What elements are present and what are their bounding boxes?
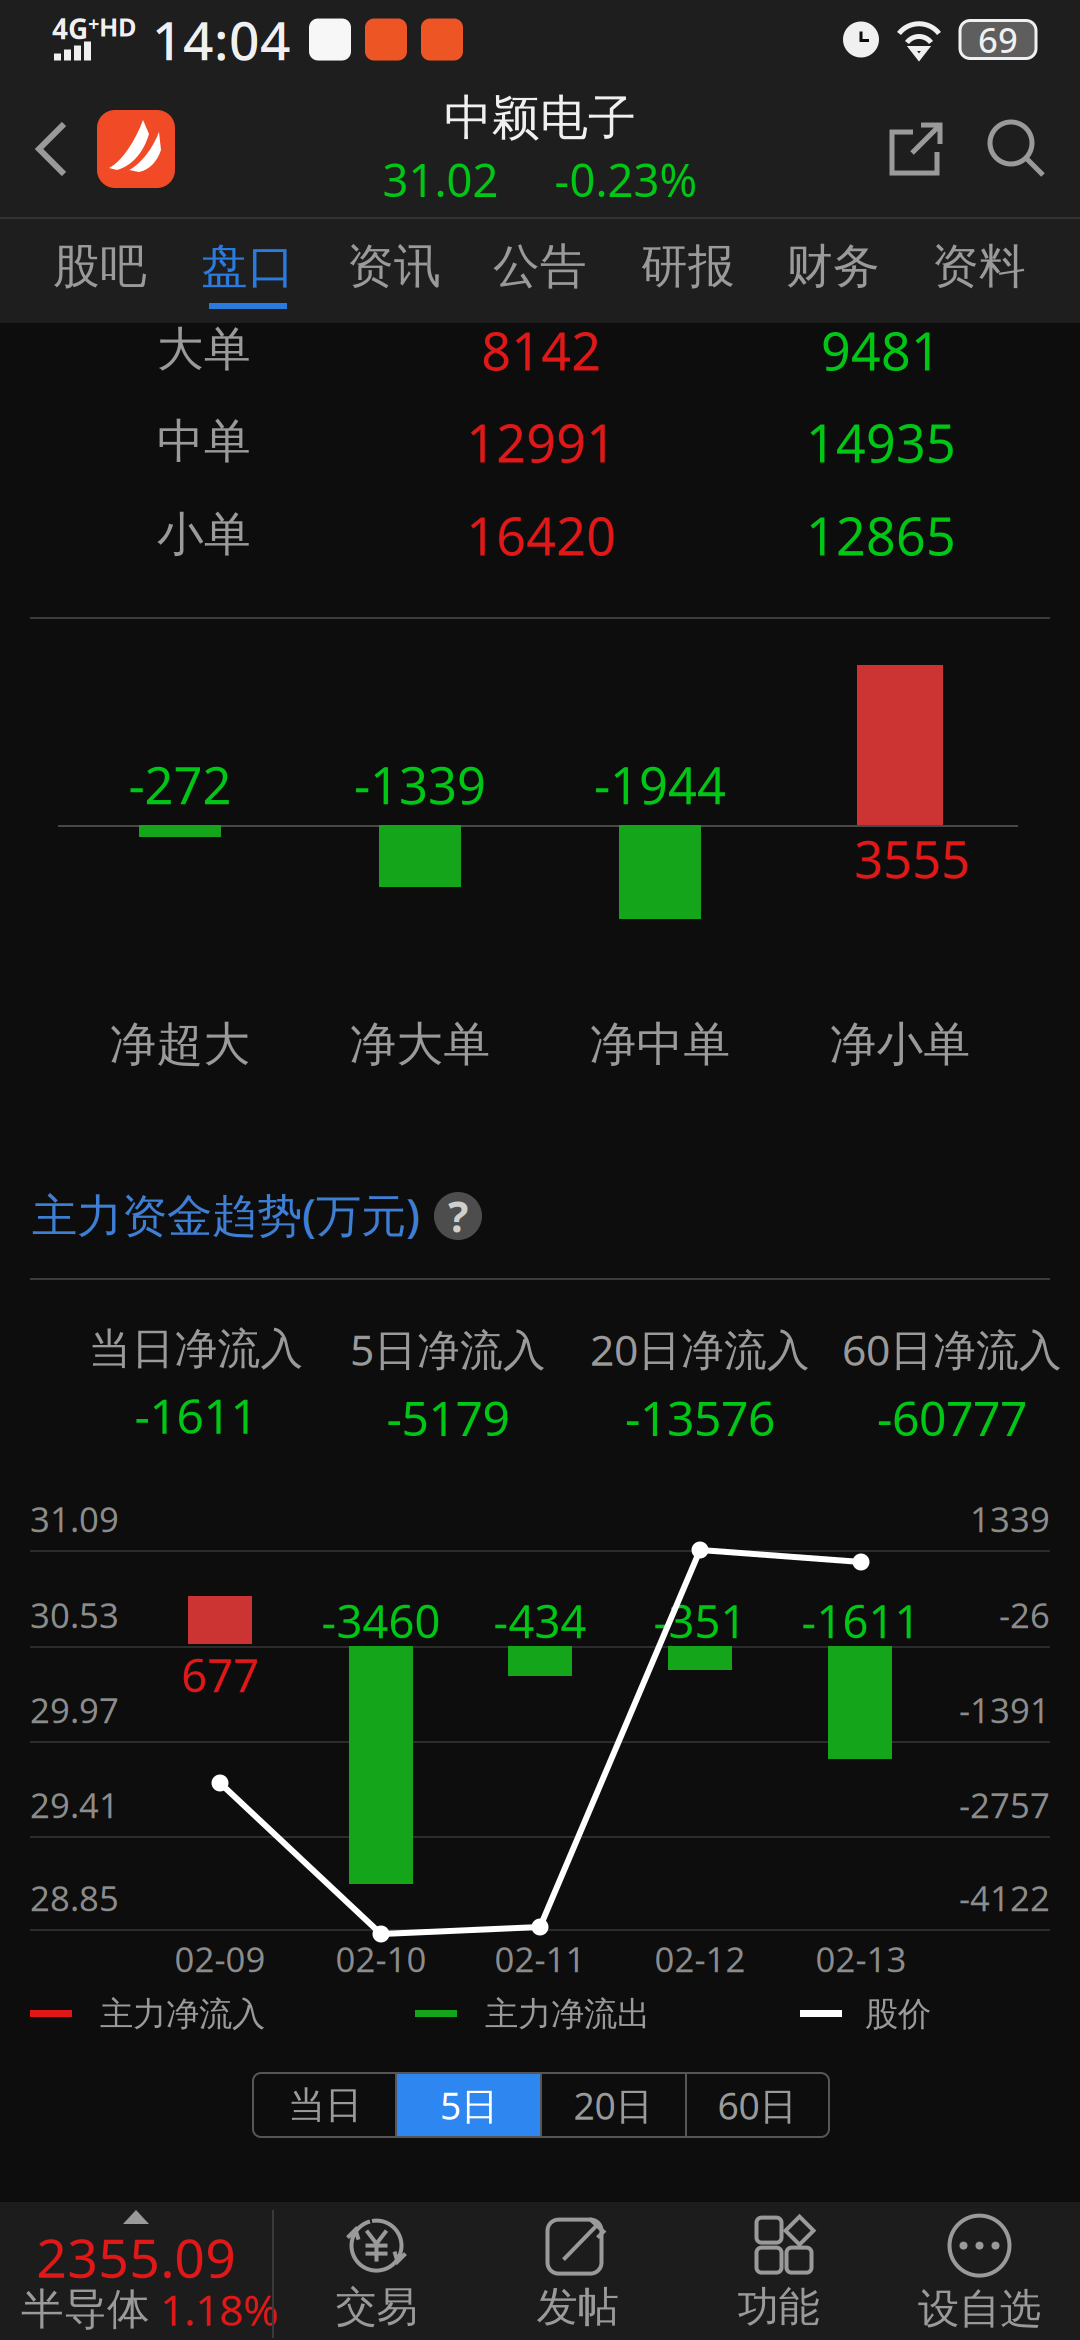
staticText: 3555: [854, 825, 970, 892]
staticText: 股吧: [53, 238, 147, 295]
staticText: 20日: [573, 2080, 652, 2130]
staticText: -60777: [877, 1385, 1027, 1449]
staticText: 30.53: [30, 1592, 119, 1638]
button[interactable]: Search: [966, 89, 1066, 209]
staticText: +: [88, 10, 99, 36]
button[interactable]: 研报: [615, 219, 761, 323]
staticText: 财务: [786, 238, 880, 295]
staticText: 中单: [157, 413, 251, 470]
staticText: -1391: [959, 1687, 1050, 1733]
staticText: 当日: [288, 2082, 362, 2128]
staticText: -3460: [321, 1590, 440, 1651]
staticText: -272: [128, 751, 231, 818]
staticText: 盘口: [201, 238, 295, 295]
staticText: 69: [978, 16, 1018, 62]
button[interactable]: 财务: [760, 219, 906, 323]
staticText: 29.41: [30, 1782, 119, 1828]
staticText: 5日: [440, 2080, 498, 2130]
staticText: -351: [653, 1590, 746, 1651]
staticText: -1944: [594, 751, 726, 818]
staticText: -5179: [386, 1385, 509, 1449]
button[interactable]: 公告: [467, 219, 613, 323]
staticText: 14935: [806, 408, 956, 477]
staticText: 1339: [970, 1496, 1050, 1542]
staticText: 29.97: [30, 1687, 119, 1733]
staticText: 4G: [52, 10, 88, 47]
staticText: 12991: [466, 408, 616, 477]
staticText: 股价: [865, 1994, 931, 2035]
staticText: 5日净流入: [350, 1321, 546, 1377]
staticText: 净小单: [829, 1016, 970, 1073]
staticText: 净超大: [109, 1016, 250, 1073]
staticText: 交易: [335, 2282, 417, 2332]
staticText: -26: [999, 1592, 1050, 1638]
staticText: -434: [493, 1590, 586, 1651]
staticText: 大单: [157, 321, 251, 378]
staticText: 主力净流出: [485, 1994, 650, 2035]
staticText: 02-12: [654, 1936, 745, 1982]
staticText: 净大单: [349, 1016, 490, 1073]
staticText: HD: [99, 10, 137, 43]
button[interactable]: Help: [434, 1192, 482, 1240]
staticText: -4122: [959, 1875, 1050, 1921]
staticText: 资讯: [347, 238, 441, 295]
staticText: -0.23%: [554, 149, 697, 210]
staticText: 31.09: [30, 1496, 119, 1542]
button[interactable]: App home: [88, 89, 184, 209]
staticText: 02-09: [174, 1936, 265, 1982]
staticText: 2355.09: [36, 2222, 236, 2292]
staticText: -1339: [354, 751, 486, 818]
staticText: -1611: [134, 1383, 257, 1447]
staticText: 资料: [932, 238, 1026, 295]
staticText: -2757: [959, 1782, 1050, 1828]
button[interactable]: 60日: [685, 2073, 829, 2137]
staticText: -1611: [801, 1590, 920, 1651]
staticText: 8142: [481, 316, 601, 385]
staticText: 半导体: [21, 2283, 150, 2335]
staticText: 02-10: [335, 1936, 426, 1982]
staticText: 发帖: [536, 2282, 618, 2332]
staticText: -13576: [625, 1385, 775, 1449]
staticText: 02-13: [815, 1936, 906, 1982]
staticText: 主力净流入: [100, 1994, 265, 2035]
staticText: 当日净流入: [88, 1323, 303, 1375]
staticText: 功能: [737, 2282, 819, 2332]
staticText: 1.18%: [160, 2281, 278, 2338]
staticText: 60日: [717, 2080, 796, 2130]
staticText: 28.85: [30, 1875, 119, 1921]
button[interactable]: 功能: [678, 2204, 879, 2340]
button[interactable]: Share: [866, 89, 966, 209]
staticText: 16420: [466, 501, 616, 570]
staticText: 中颖电子: [444, 88, 636, 147]
staticText: 研报: [641, 238, 735, 295]
button[interactable]: 交易: [276, 2204, 477, 2340]
staticText: 净中单: [589, 1016, 730, 1073]
staticText: 14:04: [152, 4, 291, 75]
staticText: 设自选: [918, 2284, 1041, 2334]
staticText: 公告: [493, 238, 587, 295]
staticText: 677: [181, 1644, 259, 1705]
button[interactable]: 资讯: [321, 219, 467, 323]
staticText: ?: [448, 1188, 468, 1244]
staticText: 60日净流入: [842, 1321, 1062, 1377]
staticText: 12865: [806, 501, 956, 570]
button[interactable]: 股吧: [27, 219, 173, 323]
button[interactable]: 5日: [397, 2073, 541, 2137]
button[interactable]: 盘口: [175, 219, 321, 323]
button[interactable]: 设自选: [879, 2204, 1080, 2340]
button[interactable]: 20日: [541, 2073, 685, 2137]
staticText: 主力资金趋势(万元): [32, 1184, 420, 1245]
button[interactable]: 发帖: [477, 2204, 678, 2340]
staticText: 9481: [821, 316, 941, 385]
button[interactable]: 资料: [906, 219, 1052, 323]
staticText: 小单: [157, 506, 251, 563]
staticText: 31.02: [382, 149, 498, 210]
button[interactable]: 2355.09: [0, 2202, 272, 2340]
staticText: 02-11: [494, 1936, 585, 1982]
button[interactable]: Back: [16, 89, 88, 209]
staticText: 20日净流入: [590, 1321, 810, 1377]
button[interactable]: 当日: [253, 2073, 397, 2137]
